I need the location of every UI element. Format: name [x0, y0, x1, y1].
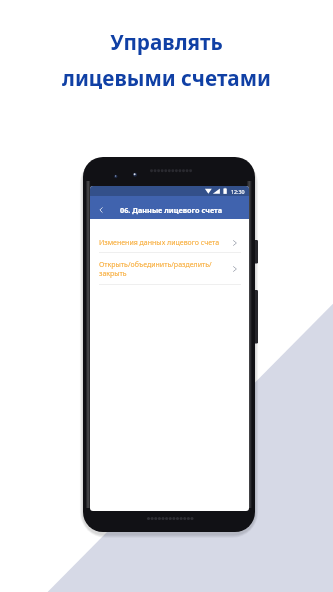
button[interactable]: Back — [94, 203, 108, 217]
staticText: 06. Данные лицевого счета — [120, 205, 223, 215]
staticText: лицевыми счетами — [62, 64, 271, 92]
staticText: Управлять — [110, 28, 223, 56]
button[interactable]: Изменения данных лицевого счета — [90, 232, 249, 253]
staticText: 12:30 — [231, 188, 245, 195]
staticText: Изменения данных лицевого счета — [99, 238, 220, 248]
button[interactable]: Открыть/объединить/разделить/ закрыть — [90, 253, 249, 285]
button[interactable]: Back — [90, 196, 249, 219]
staticText: Открыть/объединить/разделить/ закрыть — [99, 260, 212, 278]
